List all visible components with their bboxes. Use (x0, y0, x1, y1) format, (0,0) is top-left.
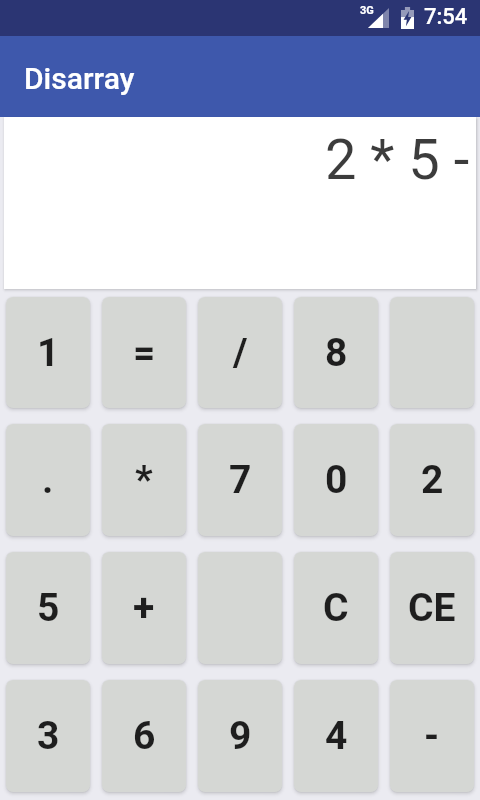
button[interactable]: 7 (198, 424, 282, 536)
staticText: 9 (229, 713, 252, 759)
button[interactable]: / (198, 297, 282, 408)
button[interactable]: - (390, 680, 474, 792)
staticText: Disarray (24, 61, 135, 96)
staticText: = (133, 330, 156, 376)
staticText: 2 (421, 457, 444, 503)
staticText: 3 (37, 713, 60, 759)
button[interactable]: = (102, 297, 186, 408)
staticText: 8 (325, 330, 348, 376)
button[interactable]: 0 (294, 424, 378, 536)
staticText: 7 (229, 457, 252, 503)
button[interactable]: 2 (390, 424, 474, 536)
staticText: / (233, 330, 248, 376)
staticText: 2 * 5 - (325, 127, 470, 193)
button[interactable]: 8 (294, 297, 378, 408)
staticText: 4 (325, 713, 348, 759)
staticText: 5 (37, 585, 60, 631)
staticText: C (323, 585, 349, 631)
staticText: CE (408, 585, 456, 631)
staticText: 3G (360, 4, 374, 17)
button[interactable]: 1 (6, 297, 90, 408)
button[interactable]: 3 (6, 680, 90, 792)
staticText: 7:54 (424, 4, 468, 30)
staticText: * (135, 457, 153, 503)
button[interactable]: 6 (102, 680, 186, 792)
button[interactable]: CE (390, 552, 474, 664)
button[interactable]: 5 (6, 552, 90, 664)
button[interactable]: . (6, 424, 90, 536)
button[interactable]: + (102, 552, 186, 664)
staticText: + (133, 585, 155, 631)
staticText: - (424, 713, 440, 759)
button[interactable]: C (294, 552, 378, 664)
staticText: 0 (325, 457, 348, 503)
staticText: 1 (37, 330, 60, 376)
button[interactable]: * (102, 424, 186, 536)
staticText: 6 (133, 713, 156, 759)
button[interactable]: 4 (294, 680, 378, 792)
staticText: . (42, 457, 54, 503)
button[interactable]: 9 (198, 680, 282, 792)
